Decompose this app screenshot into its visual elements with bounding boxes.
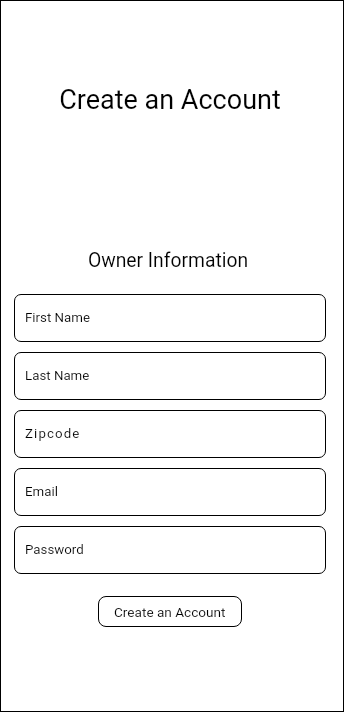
- staticText: Zipcode: [25, 426, 81, 442]
- staticText: Email: [25, 484, 58, 500]
- staticText: Create an Account: [0, 84, 340, 116]
- button[interactable]: Create an Account: [98, 596, 242, 627]
- button[interactable]: Last Name: [14, 352, 326, 400]
- staticText: First Name: [25, 310, 91, 326]
- button[interactable]: Email: [14, 468, 326, 516]
- button[interactable]: Password: [14, 526, 326, 574]
- button[interactable]: Zipcode: [14, 410, 326, 458]
- staticText: Create an Account: [114, 604, 226, 620]
- button[interactable]: First Name: [14, 294, 326, 342]
- staticText: Last Name: [25, 368, 90, 384]
- staticText: Owner Information: [0, 249, 336, 272]
- staticText: Password: [25, 542, 84, 558]
